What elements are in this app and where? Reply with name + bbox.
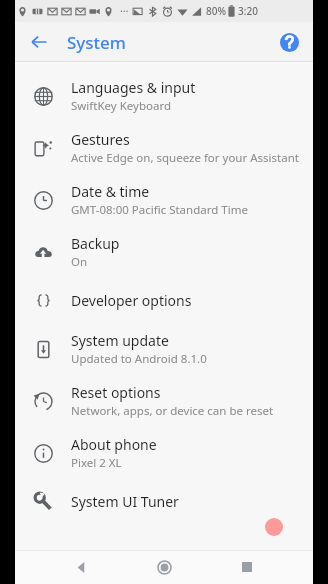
staticText: Network, apps, or device can be reset [71,403,274,419]
staticText: Gestures [71,130,130,149]
button[interactable]: Recents [230,550,264,584]
staticText: 80% [206,4,226,18]
staticText: SwiftKey Keyboard [71,98,171,114]
button[interactable]: System update [15,323,313,375]
staticText: Updated to Android 8.1.0 [71,351,207,367]
button[interactable]: Back [23,26,55,58]
button[interactable]: System UI Tuner [15,479,313,524]
staticText: System update [71,331,169,350]
staticText: System UI Tuner [71,492,179,511]
staticText: GMT-08:00 Pacific Standard Time [71,202,248,218]
staticText: Reset options [71,383,161,402]
staticText: Developer options [71,291,192,310]
button[interactable]: Help [273,26,305,58]
staticText: Languages & input [71,78,196,97]
staticText: Active Edge on, squeeze for your Assista… [71,150,299,166]
button[interactable]: Home [147,550,181,584]
staticText: On [71,254,88,270]
staticText: Date & time [71,182,150,201]
staticText: System [67,31,126,54]
button[interactable]: Backup [15,226,313,278]
button[interactable]: Languages & input [15,70,313,122]
button[interactable]: Developer options [15,278,313,323]
button[interactable]: Gestures [15,122,313,174]
button[interactable]: Back [64,550,98,584]
staticText: 3:20 [238,4,258,18]
button[interactable]: About phone [15,427,313,479]
staticText: Backup [71,234,120,253]
staticText: Pixel 2 XL [71,455,122,471]
button[interactable]: Date & time [15,174,313,226]
button[interactable]: Reset options [15,375,313,427]
staticText: About phone [71,435,157,454]
